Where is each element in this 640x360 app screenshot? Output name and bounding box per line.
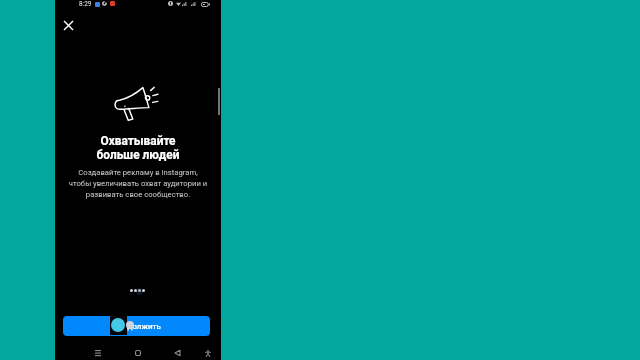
button[interactable]: Close	[59, 16, 77, 34]
staticText: Создавайте рекламу в Instagram, чтобы ув…	[55, 168, 221, 198]
button[interactable]: Back	[169, 345, 185, 360]
button[interactable]: Page indicator	[129, 286, 147, 295]
staticText: 8:29	[79, 0, 92, 8]
button[interactable]: Продолжить	[63, 316, 210, 336]
button[interactable]: Recent apps	[90, 345, 106, 360]
button[interactable]: Home	[130, 345, 146, 360]
staticText: Продолжить	[113, 322, 161, 331]
button[interactable]: Accessibility	[200, 345, 216, 360]
staticText: Охватывайте больше людей	[55, 134, 221, 162]
